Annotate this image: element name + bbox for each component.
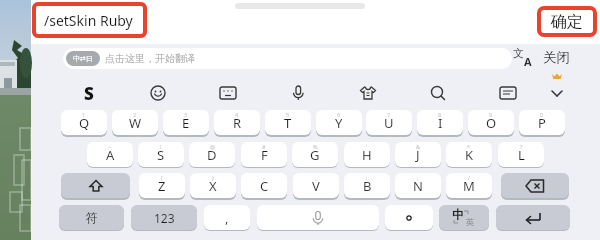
staticText: J <box>416 146 420 164</box>
staticText: 英 <box>466 217 475 228</box>
button[interactable]: G <box>292 142 338 167</box>
button[interactable]: N <box>395 173 441 198</box>
staticText: W <box>129 114 142 132</box>
button[interactable]: C <box>241 173 287 198</box>
staticText: 1 <box>82 111 86 118</box>
staticText: * <box>467 143 471 150</box>
staticText: D <box>207 146 217 164</box>
staticText: F <box>261 146 268 164</box>
staticText: O <box>486 114 497 132</box>
button[interactable]: L <box>498 142 544 167</box>
staticText: U <box>384 114 394 132</box>
button[interactable]: K <box>446 142 492 167</box>
button[interactable]: 123 <box>131 205 197 230</box>
button[interactable]: 中⇄日 <box>63 48 512 69</box>
button[interactable]: A <box>87 142 133 167</box>
button[interactable]: E <box>163 110 209 135</box>
button[interactable]: /setSkin Ruby <box>32 2 147 38</box>
staticText: 3 <box>184 111 188 118</box>
button[interactable] <box>257 205 379 230</box>
button[interactable]: Y <box>316 110 362 135</box>
button[interactable] <box>497 82 519 104</box>
staticText: 中⇄日 <box>73 54 93 63</box>
button[interactable]: W <box>112 110 158 135</box>
staticText: % <box>313 143 318 150</box>
staticText: # <box>262 143 266 150</box>
button[interactable] <box>287 82 309 104</box>
staticText: R <box>233 114 242 132</box>
staticText: 点击这里，开始翻译 <box>105 52 195 65</box>
button[interactable] <box>385 205 433 230</box>
staticText: C <box>260 177 269 195</box>
button[interactable] <box>61 173 130 198</box>
button[interactable]: 文 <box>513 47 537 69</box>
staticText: 8 <box>438 111 442 118</box>
button[interactable]: , <box>204 205 250 230</box>
staticText: 中 <box>452 207 464 222</box>
button[interactable]: 中 <box>439 205 489 230</box>
staticText: 6 <box>337 111 341 118</box>
button[interactable]: F <box>241 142 287 167</box>
staticText: G <box>310 146 320 164</box>
staticText: _ <box>315 174 318 181</box>
button[interactable] <box>217 82 239 104</box>
button[interactable]: J <box>395 142 441 167</box>
button[interactable]: 符 <box>59 205 124 230</box>
button[interactable]: Z <box>139 173 185 198</box>
staticText: 5 <box>286 111 290 118</box>
button[interactable]: V <box>293 173 339 198</box>
button[interactable]: H <box>344 142 390 167</box>
staticText: A <box>106 146 115 164</box>
staticText: 确定 <box>551 12 583 32</box>
button[interactable]: U <box>366 110 412 135</box>
staticText: K <box>465 146 474 164</box>
staticText: X <box>209 177 217 195</box>
staticText: 关闭 <box>543 49 570 66</box>
staticText: M <box>463 177 475 195</box>
staticText: : <box>366 174 368 181</box>
staticText: ! <box>160 143 162 150</box>
staticText: L <box>518 146 525 164</box>
staticText: ) <box>212 174 214 181</box>
staticText: T <box>284 114 292 132</box>
button[interactable] <box>496 205 570 230</box>
staticText: V <box>312 177 320 195</box>
staticText: 9 <box>489 111 493 118</box>
staticText: ? <box>520 143 523 150</box>
staticText: - <box>263 174 265 181</box>
staticText: Y <box>335 114 343 132</box>
staticText: A <box>524 54 532 69</box>
button[interactable]: T <box>265 110 311 135</box>
staticText: E <box>182 114 190 132</box>
button[interactable]: 关闭 <box>543 49 570 66</box>
staticText: /setSkin Ruby <box>44 11 133 30</box>
button[interactable]: M <box>446 173 492 198</box>
button[interactable] <box>357 82 379 104</box>
staticText: S <box>84 82 94 104</box>
button[interactable] <box>546 82 568 104</box>
staticText: Q <box>79 114 90 132</box>
button[interactable]: R <box>214 110 260 135</box>
button[interactable]: S <box>78 82 100 104</box>
button[interactable]: S <box>138 142 184 167</box>
staticText: 0 <box>540 111 544 118</box>
staticText: ; <box>417 174 419 181</box>
staticText: N <box>413 177 423 195</box>
staticText: Z <box>158 177 166 195</box>
button[interactable] <box>147 82 169 104</box>
button[interactable]: D <box>189 142 235 167</box>
staticText: 符 <box>86 210 98 225</box>
button[interactable] <box>427 82 449 104</box>
button[interactable]: X <box>190 173 236 198</box>
button[interactable]: O <box>468 110 514 135</box>
button[interactable] <box>501 173 569 198</box>
staticText: & <box>416 143 421 150</box>
button[interactable]: I <box>417 110 463 135</box>
button[interactable]: 确定 <box>537 6 597 37</box>
staticText: P <box>538 114 546 132</box>
button[interactable]: P <box>519 110 565 135</box>
button[interactable]: Q <box>61 110 107 135</box>
button[interactable]: B <box>344 173 390 198</box>
staticText: 2 <box>133 111 137 118</box>
staticText: , <box>225 209 229 227</box>
